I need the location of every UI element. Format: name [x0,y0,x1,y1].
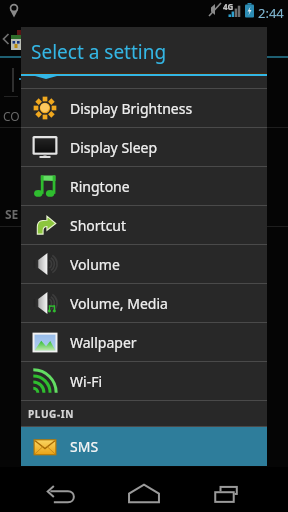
button[interactable]: Ringtone [21,167,267,205]
staticText: 4G [223,1,234,12]
staticText: Display Sleep [70,138,158,157]
staticText: CO [3,108,20,124]
staticText: Volume, Media [70,294,168,313]
staticText: Ringtone [70,177,130,196]
button[interactable]: Home [122,468,166,512]
button[interactable]: Display Sleep [21,128,267,166]
staticText: Volume [70,255,120,274]
staticText: Shortcut [70,216,127,235]
staticText: 2:44 [258,4,284,22]
button[interactable]: Wallpaper [21,323,267,361]
button[interactable]: Wi-Fi [21,362,267,400]
staticText: Wallpaper [70,333,137,352]
button[interactable]: Shortcut [21,206,267,244]
staticText: SE [5,206,19,222]
staticText: PLUG-IN [28,407,74,421]
button[interactable]: Volume [21,245,267,283]
staticText: SMS [70,437,99,456]
button[interactable]: Recent apps [206,468,250,512]
button[interactable]: SMS [21,427,267,466]
button[interactable]: Display Brightness [21,89,267,127]
staticText: Wi-Fi [70,372,103,391]
button[interactable]: Back [38,468,82,512]
staticText: Display Brightness [70,99,193,118]
staticText: Select a setting [31,39,167,65]
button[interactable]: Volume, Media [21,284,267,322]
